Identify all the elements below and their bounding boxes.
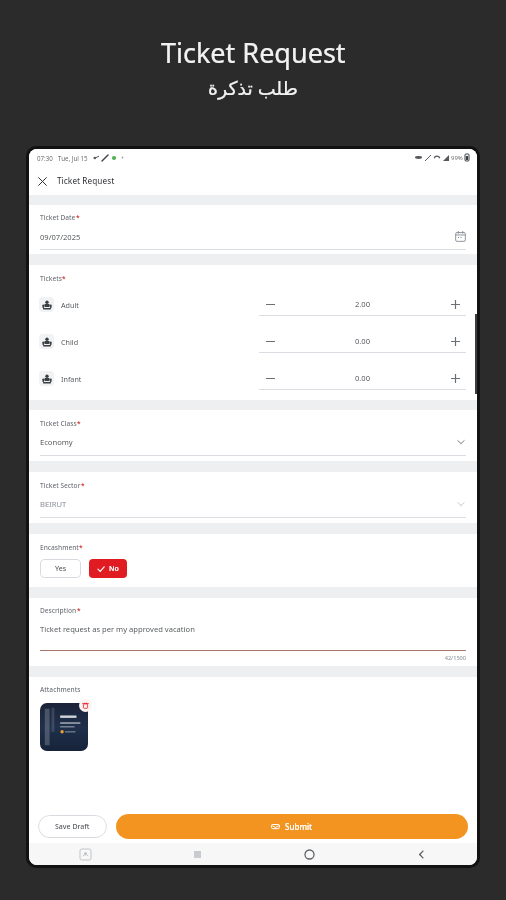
button[interactable]: BEIRUT	[40, 499, 466, 509]
staticText: Child	[61, 337, 79, 347]
staticText: Save Draft	[55, 822, 90, 832]
other: Increase Adult	[451, 300, 460, 309]
button[interactable]: Increase Child	[444, 330, 466, 352]
staticText: Ticket Date	[40, 213, 76, 222]
staticText: Infant	[61, 374, 82, 384]
button[interactable]: Back	[417, 850, 426, 859]
staticText: 0.00	[281, 373, 444, 383]
button[interactable]: No	[89, 559, 127, 578]
other: Increase Child	[451, 337, 460, 346]
staticText: 0.00	[281, 336, 444, 346]
staticText: Tue, Jul 15	[58, 154, 88, 162]
staticText: *	[62, 274, 66, 283]
staticText: *	[81, 481, 85, 490]
staticText: 99%	[451, 154, 463, 162]
staticText: Attachments	[40, 685, 81, 694]
staticText: Submit	[285, 821, 313, 832]
staticText: *	[76, 213, 80, 222]
button[interactable]: Decrease Infant	[259, 367, 281, 389]
staticText: Ticket Request	[57, 175, 115, 186]
staticText: Ticket request as per my approved vacati…	[40, 624, 195, 634]
other: Keyboard	[80, 849, 91, 860]
staticText: 09/07/2025	[40, 232, 455, 242]
staticText: *	[77, 606, 81, 615]
button[interactable]: Yes	[40, 559, 81, 578]
staticText: Tickets	[40, 274, 62, 283]
button[interactable]: Decrease Adult	[259, 293, 281, 315]
staticText: 42/1500	[40, 654, 466, 662]
button[interactable]: Increase Infant	[444, 367, 466, 389]
button[interactable]: Economy	[40, 437, 466, 447]
other: Increase Infant	[451, 374, 460, 383]
staticText: Ticket Request	[161, 34, 346, 71]
staticText: 2.00	[281, 299, 444, 309]
staticText: BEIRUT	[40, 499, 456, 509]
staticText: *	[79, 543, 83, 552]
button[interactable]: Increase Adult	[444, 293, 466, 315]
staticText: Description	[40, 606, 77, 615]
button[interactable]: Submit	[116, 814, 468, 839]
button[interactable]: Close	[29, 168, 55, 194]
button[interactable]: 09/07/2025	[40, 231, 466, 242]
other: Pick date	[455, 231, 466, 242]
staticText: *	[77, 419, 81, 428]
button[interactable]: Decrease Child	[259, 330, 281, 352]
staticText: طلب تذكرة	[208, 75, 298, 101]
staticText: Yes	[55, 564, 67, 574]
button[interactable]: Save Draft	[38, 815, 107, 838]
staticText: Ticket Class	[40, 419, 77, 428]
staticText: Economy	[40, 437, 456, 447]
staticText: Encashment	[40, 543, 79, 552]
button[interactable]: Attachment preview	[40, 703, 88, 751]
staticText: Adult	[61, 300, 79, 310]
staticText: 07:30	[37, 154, 53, 162]
staticText: No	[109, 564, 119, 574]
button[interactable]: Remove attachment	[79, 699, 92, 712]
button[interactable]: Home	[305, 850, 314, 859]
staticText: Ticket Sector	[40, 481, 81, 490]
